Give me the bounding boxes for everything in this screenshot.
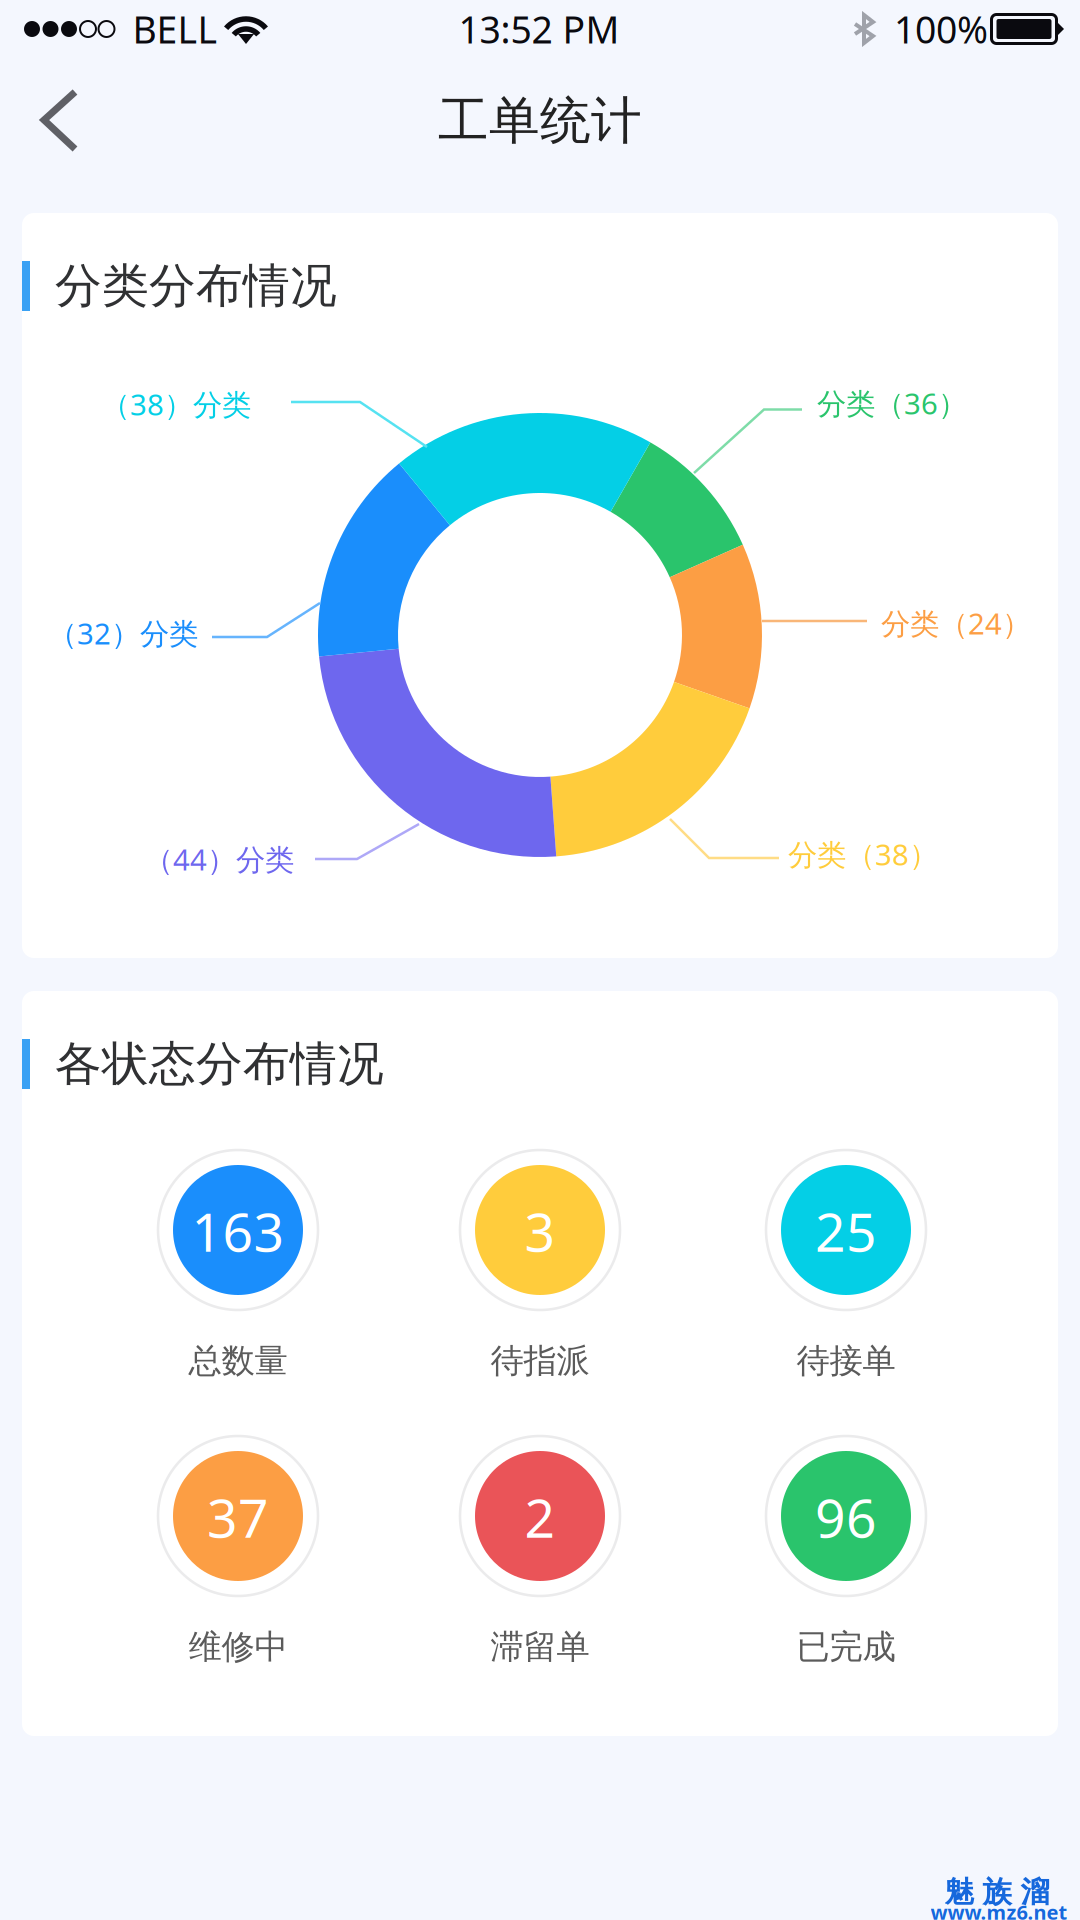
staticText: 各状态分布情况 — [55, 1035, 384, 1093]
staticText: （38）分类 — [101, 384, 251, 423]
staticText: 分类分布情况 — [55, 257, 337, 315]
staticText: 37 — [207, 1482, 269, 1552]
staticText: 滞留单 — [490, 1626, 589, 1667]
button[interactable]: 3 — [0, 0, 1080, 1920]
staticText: 96 — [815, 1482, 877, 1552]
staticText: （32）分类 — [48, 613, 198, 652]
staticText: 13:52 PM — [458, 4, 619, 54]
staticText: 总数量 — [188, 1340, 287, 1381]
staticText: 维修中 — [188, 1626, 287, 1667]
staticText: 分类（38） — [788, 834, 938, 873]
button[interactable]: Back — [0, 0, 132, 200]
button[interactable]: 96 — [0, 0, 1080, 1920]
button[interactable]: 25 — [0, 0, 1080, 1920]
staticText: （44）分类 — [144, 839, 294, 878]
staticText: 3 — [524, 1196, 555, 1266]
button[interactable]: 2 — [0, 0, 1080, 1920]
staticText: 分类（36） — [817, 383, 967, 422]
staticText: BELL — [132, 4, 217, 54]
staticText: 163 — [191, 1196, 284, 1266]
staticText: 待接单 — [796, 1340, 895, 1381]
button[interactable]: 163 — [0, 0, 1080, 1920]
staticText: 分类（24） — [881, 603, 1031, 642]
staticText: 100% — [894, 4, 988, 54]
staticText: 2 — [524, 1482, 555, 1552]
staticText: www.mz6.net — [930, 1899, 1067, 1920]
staticText: 魅 族 溜 — [944, 1874, 1049, 1910]
staticText: 待指派 — [490, 1340, 589, 1381]
staticText: 工单统计 — [438, 90, 642, 152]
staticText: 已完成 — [796, 1626, 895, 1667]
staticText: 25 — [815, 1196, 877, 1266]
button[interactable]: 37 — [0, 0, 1080, 1920]
